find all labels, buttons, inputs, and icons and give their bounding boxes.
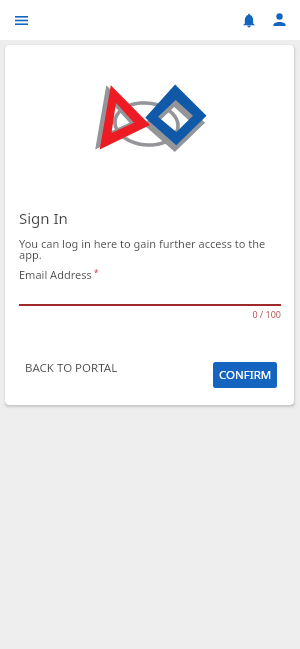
staticText: Email Address: [19, 267, 92, 282]
staticText: BACK TO PORTAL: [25, 360, 118, 376]
button[interactable]: Menu: [6, 5, 36, 35]
button[interactable]: Account: [264, 5, 294, 35]
staticText: *: [92, 267, 99, 278]
staticText: CONFIRM: [219, 367, 272, 383]
staticText: 0 / 100: [19, 308, 281, 320]
staticText: You can log in here to gain further acce…: [19, 236, 283, 262]
button[interactable]: Notifications: [234, 5, 264, 35]
button[interactable]: BACK TO PORTAL: [17, 352, 126, 384]
button[interactable]: CONFIRM: [213, 362, 277, 388]
staticText: Sign In: [19, 208, 68, 228]
